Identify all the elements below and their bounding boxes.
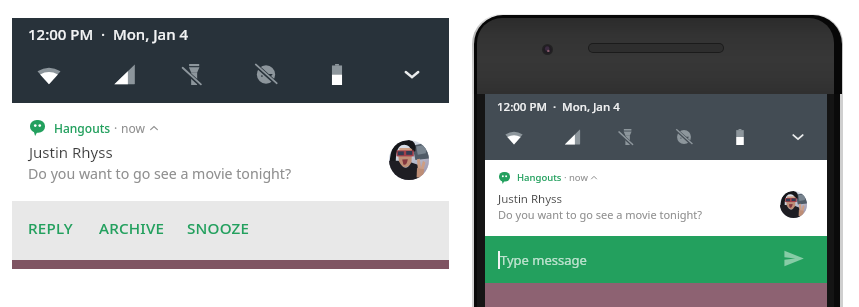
button[interactable]: Auto-rotate off xyxy=(673,126,695,148)
staticText: ARCHIVE xyxy=(99,218,165,239)
button[interactable]: Auto-rotate off xyxy=(251,59,281,89)
staticText: 12:00 PM · Mon, Jan 4 xyxy=(28,24,189,44)
button[interactable]: Cellular signal xyxy=(561,126,583,148)
button[interactable]: Expand quick settings xyxy=(787,126,809,148)
button[interactable]: Expand quick settings xyxy=(397,59,427,89)
staticText: · xyxy=(114,120,118,136)
staticText: Justin Rhyss xyxy=(29,142,113,162)
button[interactable]: Flashlight off xyxy=(177,59,207,89)
staticText: now xyxy=(121,120,145,136)
staticText: · xyxy=(564,171,567,184)
button[interactable]: SNOOZE xyxy=(180,213,257,244)
button[interactable]: Flashlight off xyxy=(615,126,637,148)
staticText: 12:00 PM · Mon, Jan 4 xyxy=(497,99,620,115)
button[interactable]: Send xyxy=(780,244,808,272)
button[interactable]: Battery xyxy=(322,59,352,89)
button[interactable]: Wi-Fi xyxy=(34,59,64,89)
button[interactable]: Wi-Fi xyxy=(503,126,525,148)
staticText: Justin Rhyss xyxy=(498,191,563,207)
staticText: Type message xyxy=(500,251,587,269)
button[interactable]: Battery xyxy=(729,126,751,148)
staticText: REPLY xyxy=(28,218,73,239)
button[interactable]: REPLY xyxy=(21,213,80,244)
staticText: SNOOZE xyxy=(187,218,250,239)
staticText: now xyxy=(569,171,588,184)
staticText: Do you want to go see a movie tonight? xyxy=(28,164,292,183)
staticText: Do you want to go see a movie tonight? xyxy=(498,207,703,222)
staticText: Hangouts xyxy=(517,171,562,184)
staticText: Hangouts xyxy=(54,120,111,136)
button[interactable]: Cellular signal xyxy=(109,59,139,89)
button[interactable]: ARCHIVE xyxy=(92,213,172,244)
